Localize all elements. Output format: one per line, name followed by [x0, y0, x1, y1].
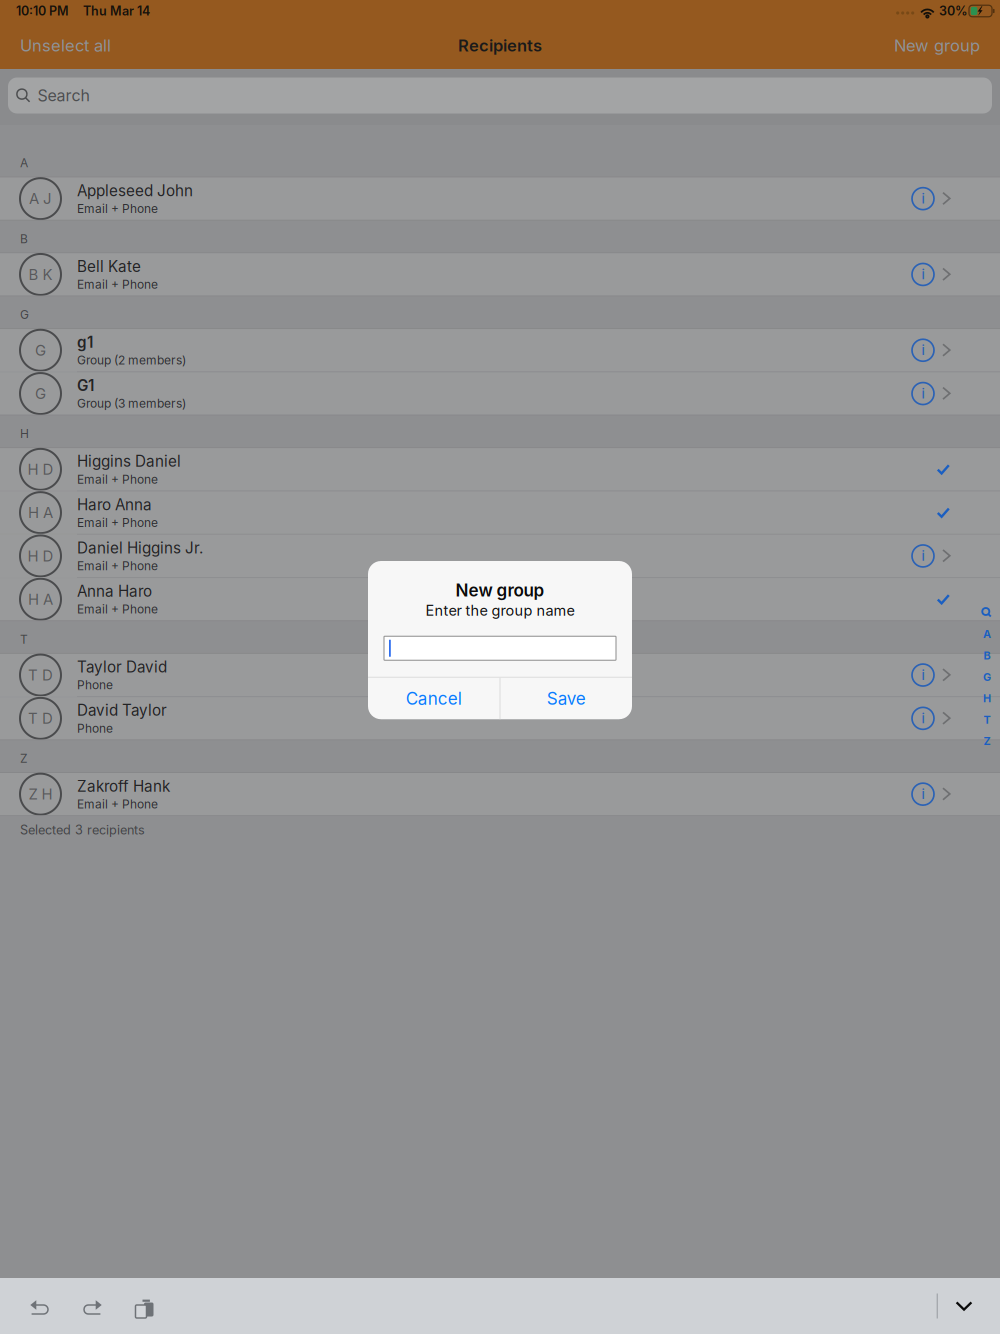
- staticText: Bell Kate: [77, 257, 141, 276]
- staticText: Higgins Daniel: [77, 452, 181, 470]
- staticText: Email + Phone: [77, 201, 158, 216]
- staticText: Search: [38, 86, 90, 105]
- staticText: B: [983, 649, 990, 662]
- staticText: G1: [77, 376, 94, 395]
- staticText: Z: [983, 734, 990, 748]
- staticText: New group: [894, 35, 980, 55]
- button[interactable]: G: [0, 372, 1000, 415]
- staticText: A J: [29, 190, 52, 208]
- staticText: Thu Mar 14: [83, 3, 150, 19]
- button[interactable]: Redo: [66, 1278, 118, 1334]
- staticText: Haro Anna: [77, 495, 152, 514]
- button[interactable]: Z H: [0, 773, 1000, 815]
- staticText: i: [921, 191, 924, 207]
- staticText: G: [20, 307, 29, 322]
- staticText: H: [20, 426, 29, 441]
- button[interactable]: More info: [904, 654, 942, 696]
- staticText: i: [921, 710, 924, 726]
- staticText: Z H: [28, 785, 52, 803]
- button[interactable]: T D: [0, 654, 1000, 696]
- button[interactable]: Hide keyboard: [938, 1278, 990, 1334]
- button[interactable]: H D: [0, 535, 1000, 577]
- button[interactable]: New group: [894, 22, 1000, 69]
- staticText: G: [983, 670, 991, 683]
- staticText: Anna Haro: [77, 582, 152, 600]
- staticText: Phone: [77, 721, 113, 735]
- staticText: T: [20, 632, 28, 647]
- staticText: H D: [27, 547, 53, 565]
- staticText: T D: [28, 709, 53, 727]
- button[interactable]: More info: [904, 372, 942, 415]
- button[interactable]: Undo: [14, 1278, 66, 1334]
- staticText: i: [921, 786, 924, 802]
- staticText: A: [20, 156, 28, 170]
- staticText: Email + Phone: [77, 559, 158, 573]
- staticText: H: [983, 692, 991, 705]
- staticText: Save: [547, 688, 586, 709]
- staticText: 10:10 PM: [16, 3, 69, 19]
- button[interactable]: More info: [904, 697, 942, 739]
- staticText: Email + Phone: [77, 472, 158, 486]
- staticText: G: [35, 341, 46, 359]
- staticText: B K: [28, 265, 52, 283]
- staticText: Email + Phone: [77, 515, 158, 530]
- button[interactable]: More info: [904, 773, 942, 815]
- staticText: Cancel: [406, 688, 462, 709]
- staticText: Daniel Higgins Jr.: [77, 539, 203, 557]
- staticText: i: [921, 266, 924, 282]
- staticText: David Taylor: [77, 701, 167, 719]
- staticText: Phone: [77, 678, 113, 692]
- staticText: T D: [28, 666, 53, 684]
- button[interactable]: More info: [904, 177, 942, 220]
- staticText: i: [921, 385, 924, 402]
- button[interactable]: More info: [904, 253, 942, 296]
- button[interactable]: Section index: [976, 602, 998, 752]
- button[interactable]: H A: [0, 491, 1000, 534]
- staticText: g1: [77, 333, 93, 351]
- staticText: B: [20, 231, 28, 246]
- staticText: T: [983, 713, 990, 726]
- staticText: A: [983, 627, 991, 641]
- button[interactable]: B K: [0, 253, 1000, 296]
- staticText: i: [921, 667, 924, 683]
- staticText: i: [921, 548, 924, 564]
- button[interactable]: More info: [904, 535, 942, 577]
- staticText: Taylor David: [77, 658, 167, 676]
- button[interactable]: Unselect all: [0, 22, 111, 69]
- staticText: Zakroff Hank: [77, 777, 170, 795]
- staticText: Group (3 members): [77, 396, 186, 411]
- button[interactable]: Cancel: [368, 678, 499, 719]
- button[interactable]: H A: [0, 578, 1000, 620]
- staticText: Email + Phone: [77, 277, 158, 292]
- staticText: Selected 3 recipients: [20, 822, 145, 838]
- staticText: H A: [28, 504, 53, 522]
- button[interactable]: Paste: [118, 1278, 170, 1334]
- staticText: Appleseed John: [77, 181, 193, 200]
- staticText: Email + Phone: [77, 797, 158, 811]
- button[interactable]: A J: [0, 177, 1000, 220]
- staticText: 30%: [939, 3, 968, 19]
- staticText: Recipients: [458, 35, 542, 55]
- staticText: Email + Phone: [77, 602, 158, 616]
- button[interactable]: T D: [0, 697, 1000, 739]
- staticText: H D: [27, 460, 53, 478]
- staticText: Enter the group name: [425, 602, 574, 619]
- button[interactable]: H D: [0, 448, 1000, 490]
- staticText: New group: [455, 580, 544, 601]
- button[interactable]: G: [0, 329, 1000, 371]
- staticText: G: [35, 384, 46, 403]
- staticText: i: [921, 342, 924, 358]
- staticText: Unselect all: [20, 35, 111, 55]
- staticText: Group (2 members): [77, 353, 186, 367]
- staticText: H A: [28, 590, 53, 608]
- staticText: Z: [20, 751, 28, 766]
- button[interactable]: More info: [904, 329, 942, 371]
- button[interactable]: Save: [500, 678, 632, 719]
